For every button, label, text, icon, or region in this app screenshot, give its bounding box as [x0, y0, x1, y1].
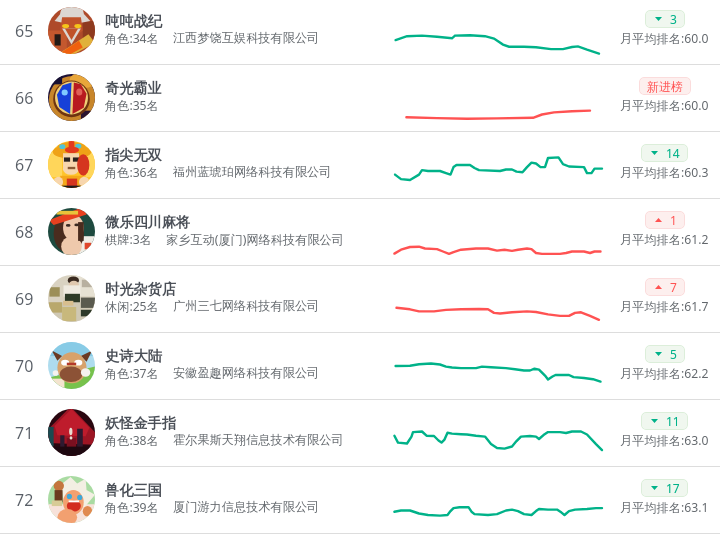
button[interactable]: 11: [651, 412, 680, 430]
other: 吨吨战纪: [48, 7, 95, 54]
button[interactable]: 66: [0, 64, 720, 131]
staticText: 角色:35名: [105, 97, 159, 114]
other: 奇光霸业: [48, 74, 95, 121]
button[interactable]: 65: [0, 0, 720, 64]
button[interactable]: 1: [655, 211, 677, 229]
button[interactable]: 7: [655, 278, 677, 296]
staticText: 17: [666, 480, 680, 496]
staticText: 角色:34名: [105, 30, 159, 47]
staticText: 安徽盈趣网络科技有限公司: [173, 365, 320, 380]
staticText: 月平均排名:62.2: [620, 365, 709, 382]
staticText: 72: [15, 489, 34, 511]
staticText: 史诗大陆: [105, 347, 162, 365]
staticText: 吨吨战纪: [105, 12, 162, 30]
staticText: 新进榜: [647, 79, 683, 94]
staticText: 角色:38名: [105, 432, 159, 449]
staticText: 1: [670, 212, 677, 228]
button[interactable]: 5: [655, 345, 677, 363]
other: 时光杂货店: [48, 275, 95, 322]
staticText: 棋牌:3名: [105, 231, 152, 248]
other: 史诗大陆: [48, 342, 95, 389]
staticText: 江西梦饶互娱科技有限公司: [173, 30, 320, 45]
staticText: 月平均排名:61.2: [620, 231, 709, 248]
staticText: 时光杂货店: [105, 280, 176, 298]
button[interactable]: 72: [0, 466, 720, 533]
other: 微乐四川麻将: [48, 208, 95, 255]
staticText: 角色:39名: [105, 499, 159, 516]
staticText: 69: [15, 288, 34, 310]
staticText: 休闲:25名: [105, 298, 159, 315]
button[interactable]: 67: [0, 131, 720, 198]
staticText: 月平均排名:63.0: [620, 432, 709, 449]
staticText: 70: [15, 355, 34, 377]
staticText: 月平均排名:61.7: [620, 298, 709, 315]
staticText: 3: [670, 11, 677, 27]
other: 兽化三国: [48, 476, 95, 523]
button[interactable]: 新进榜: [647, 77, 683, 95]
button[interactable]: 14: [651, 144, 680, 162]
staticText: 家乡互动(厦门)网络科技有限公司: [166, 231, 344, 248]
other: 指尖无双: [48, 141, 95, 188]
button[interactable]: 69: [0, 265, 720, 332]
staticText: 67: [15, 154, 34, 176]
staticText: 角色:36名: [105, 164, 159, 181]
button[interactable]: 70: [0, 332, 720, 399]
staticText: 5: [670, 346, 677, 362]
staticText: 66: [15, 87, 34, 109]
button[interactable]: 17: [651, 479, 680, 497]
button[interactable]: 68: [0, 198, 720, 265]
staticText: 兽化三国: [105, 481, 162, 499]
button[interactable]: 71: [0, 399, 720, 466]
staticText: 71: [15, 422, 34, 444]
staticText: 月平均排名:60.3: [620, 164, 709, 181]
staticText: 微乐四川麻将: [105, 213, 191, 231]
staticText: 14: [666, 145, 680, 161]
staticText: 65: [15, 20, 34, 42]
staticText: 厦门游力信息技术有限公司: [173, 499, 320, 514]
staticText: 奇光霸业: [105, 79, 162, 97]
staticText: 妖怪金手指: [105, 414, 176, 432]
staticText: 霍尔果斯天翔信息技术有限公司: [173, 432, 344, 447]
staticText: 11: [666, 413, 680, 429]
button[interactable]: 3: [655, 10, 677, 28]
staticText: 福州蓝琥珀网络科技有限公司: [173, 164, 332, 179]
staticText: 角色:37名: [105, 365, 159, 382]
staticText: 月平均排名:60.0: [620, 97, 709, 114]
other: 妖怪金手指: [48, 409, 95, 456]
staticText: 68: [15, 221, 34, 243]
staticText: 月平均排名:60.0: [620, 30, 709, 47]
staticText: 广州三七网络科技有限公司: [173, 298, 320, 313]
staticText: 指尖无双: [105, 146, 162, 164]
staticText: 月平均排名:63.1: [620, 499, 709, 516]
staticText: 7: [670, 279, 677, 295]
